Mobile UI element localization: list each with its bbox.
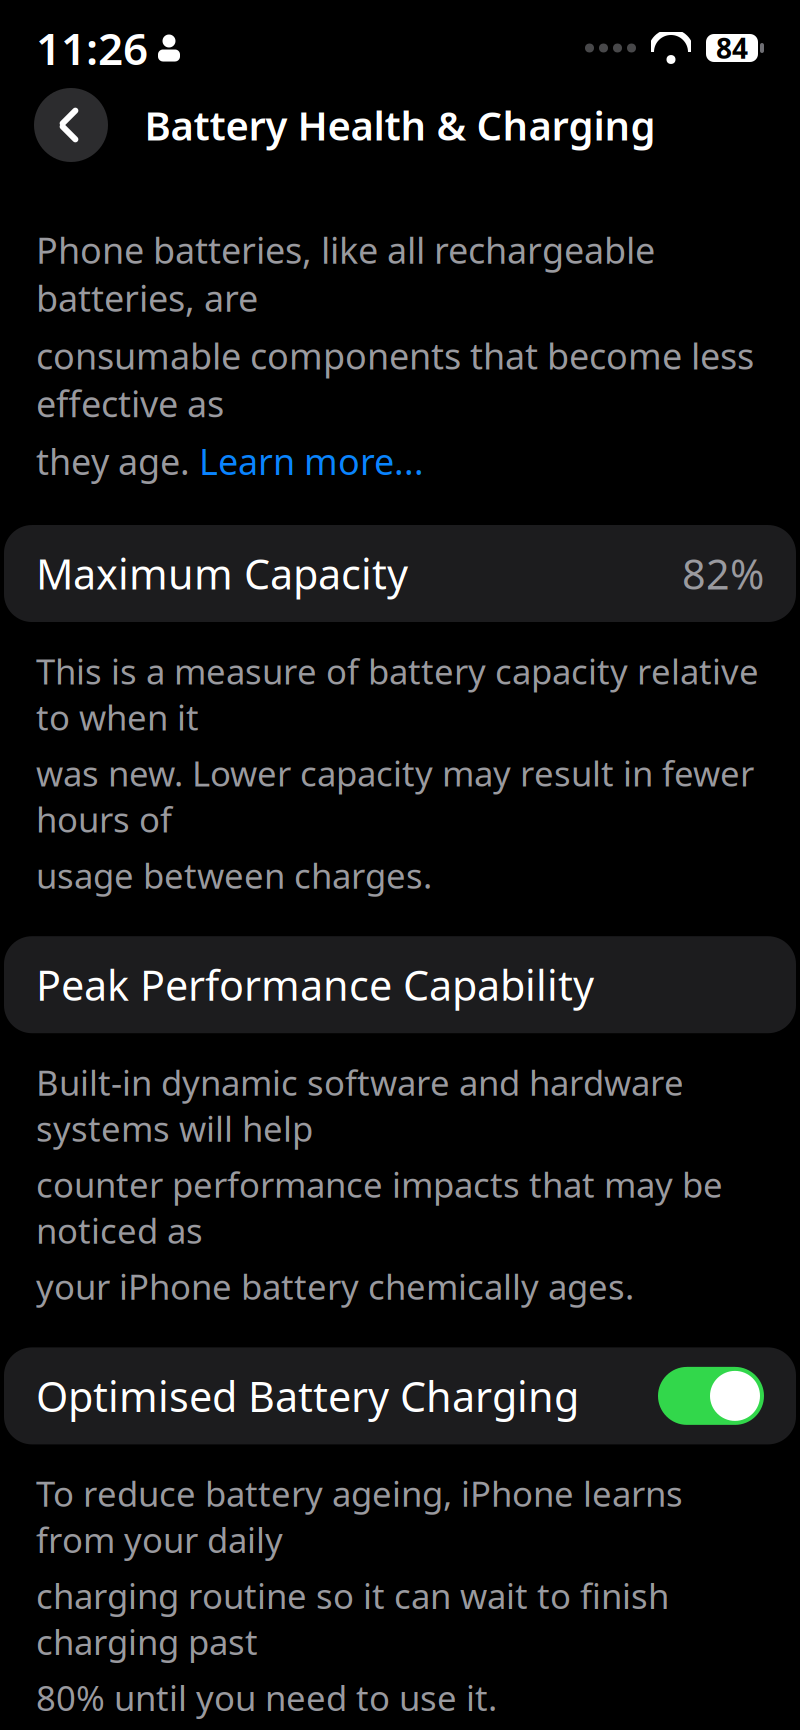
staticText: Battery Health & Charging <box>144 98 655 151</box>
staticText: usage between charges. <box>36 852 432 898</box>
button[interactable]: Back <box>34 88 108 162</box>
staticText: charging routine so it can wait to finis… <box>36 1572 669 1665</box>
staticText: 84 <box>716 29 748 67</box>
staticText: consumable components that become less e… <box>36 332 754 427</box>
staticText: Peak Performance Capability <box>36 957 594 1012</box>
button[interactable]: Peak Performance Capability <box>4 936 796 1033</box>
staticText: Learn more... <box>199 437 424 485</box>
staticText: This is a measure of battery capacity re… <box>36 648 759 740</box>
staticText: 80% until you need to use it. <box>36 1674 497 1720</box>
button[interactable]: Learn more... <box>199 437 424 485</box>
button[interactable]: Optimised Battery Charging <box>4 1347 796 1444</box>
staticText: was new. Lower capacity may result in fe… <box>36 750 754 842</box>
staticText: Phone batteries, like all rechargeable b… <box>36 226 655 322</box>
staticText: 11:26 <box>36 19 148 77</box>
staticText: they age. <box>36 437 199 485</box>
button[interactable]: Maximum Capacity <box>4 525 796 622</box>
staticText: Built-in dynamic software and hardware s… <box>36 1059 684 1151</box>
staticText: 82% <box>682 546 764 601</box>
staticText: To reduce battery ageing, iPhone learns … <box>36 1470 683 1562</box>
staticText: counter performance impacts that may be … <box>36 1161 723 1253</box>
staticText: Optimised Battery Charging <box>36 1368 579 1423</box>
staticText: your iPhone battery chemically ages. <box>36 1263 634 1309</box>
staticText: Maximum Capacity <box>36 546 408 601</box>
